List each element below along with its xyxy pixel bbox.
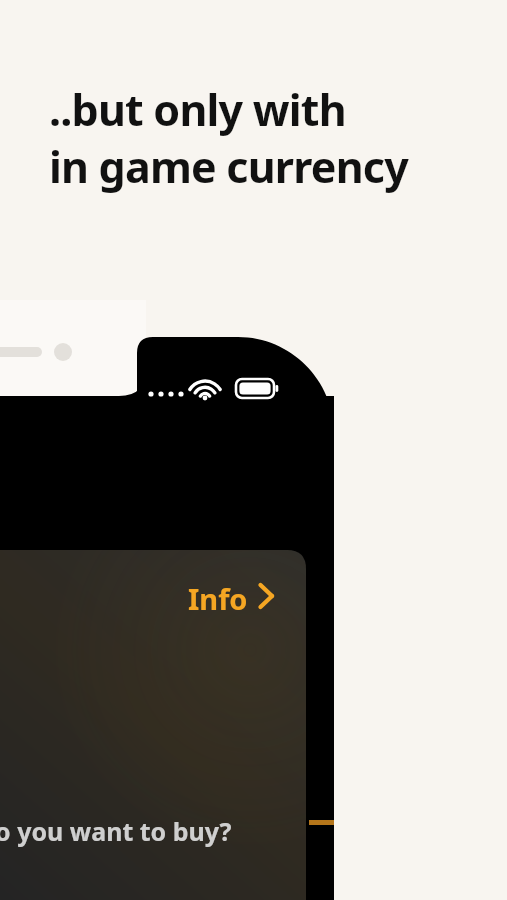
button[interactable]: In game currency promotional screen: [0, 0, 507, 900]
